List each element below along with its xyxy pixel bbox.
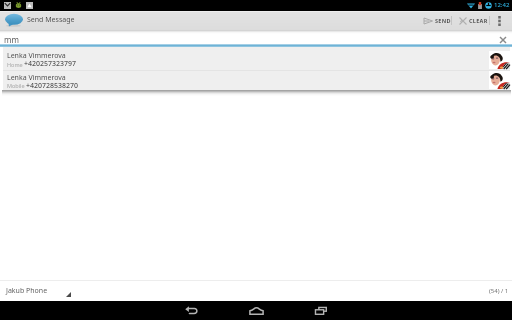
staticText: Lenka Vimmerova (7, 73, 66, 83)
staticText: mm (4, 34, 19, 45)
staticText: 12:42 (494, 1, 510, 9)
button[interactable]: Lenka Vimmerova (3, 71, 510, 90)
button[interactable]: Recent apps (300, 301, 342, 320)
staticText: +420728538270 (26, 81, 79, 88)
button[interactable]: Lenka Vimmerova (3, 47, 510, 70)
staticText: Mobile (7, 82, 25, 89)
button[interactable]: Back (170, 301, 212, 320)
button[interactable]: Clear text (497, 34, 508, 45)
button[interactable]: More options (490, 11, 512, 30)
staticText: SEND (435, 17, 451, 24)
staticText: (54) / 1 (489, 287, 509, 295)
staticText: +420257323797 (24, 59, 77, 68)
staticText: CLEAR (469, 17, 488, 24)
button[interactable]: Jakub Phone (0, 282, 71, 300)
staticText: Home (7, 61, 23, 68)
button[interactable]: Home (235, 301, 277, 320)
button[interactable]: SEND (413, 11, 451, 30)
staticText: Lenka Vimmerova (7, 51, 66, 61)
button[interactable]: CLEAR (452, 11, 489, 30)
staticText: Jakub Phone (6, 286, 48, 296)
staticText: Send Message (27, 15, 75, 25)
